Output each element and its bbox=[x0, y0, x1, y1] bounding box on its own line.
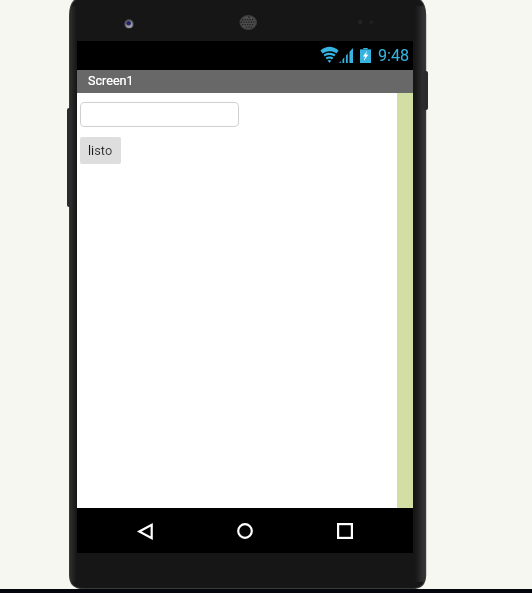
button[interactable]: listo bbox=[80, 137, 121, 164]
button[interactable]: Back bbox=[123, 509, 167, 554]
button[interactable] bbox=[80, 102, 239, 127]
staticText: listo bbox=[88, 143, 113, 158]
staticText: 9:48 bbox=[378, 46, 410, 65]
button[interactable]: Recents bbox=[323, 508, 367, 553]
staticText: Screen1 bbox=[88, 73, 134, 88]
button[interactable]: Home bbox=[223, 508, 267, 553]
